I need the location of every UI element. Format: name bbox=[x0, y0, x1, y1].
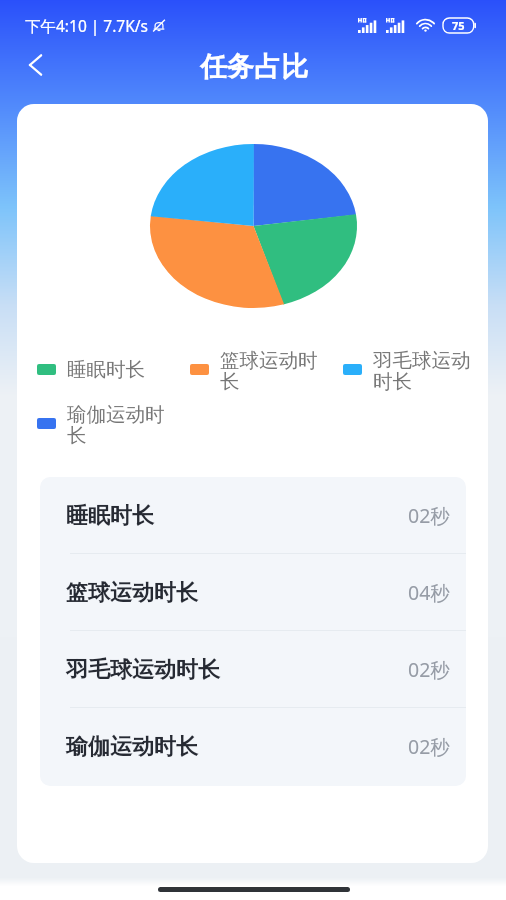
staticText: 下午4:10 | 7.7K/s bbox=[25, 15, 149, 36]
staticText: 04秒 bbox=[408, 579, 450, 606]
staticText: 瑜伽运动时长 bbox=[66, 733, 198, 761]
button[interactable]: 羽毛球运动时长 bbox=[40, 631, 466, 708]
staticText: 羽毛球运动时长 bbox=[373, 348, 473, 391]
staticText: 02秒 bbox=[408, 656, 450, 683]
button[interactable]: 睡眠时长 bbox=[37, 348, 167, 391]
staticText: 02秒 bbox=[408, 502, 450, 529]
staticText: 任务占比 bbox=[200, 50, 308, 84]
button[interactable]: 篮球运动时长 bbox=[190, 348, 320, 391]
staticText: 篮球运动时长 bbox=[220, 348, 320, 391]
staticText: 75 bbox=[452, 18, 465, 33]
staticText: 睡眠时长 bbox=[67, 357, 145, 382]
staticText: 睡眠时长 bbox=[66, 502, 154, 530]
button[interactable]: 篮球运动时长 bbox=[40, 554, 466, 631]
button[interactable]: 睡眠时长 bbox=[40, 477, 466, 554]
button[interactable]: 瑜伽运动时长 bbox=[40, 708, 466, 785]
button[interactable]: 羽毛球运动时长 bbox=[343, 348, 473, 391]
staticText: 篮球运动时长 bbox=[66, 579, 198, 607]
staticText: 02秒 bbox=[408, 733, 450, 760]
button[interactable]: 瑜伽运动时长 bbox=[37, 402, 167, 445]
staticText: 羽毛球运动时长 bbox=[66, 656, 220, 684]
staticText: 瑜伽运动时长 bbox=[67, 402, 167, 445]
button[interactable]: Back bbox=[14, 43, 58, 87]
